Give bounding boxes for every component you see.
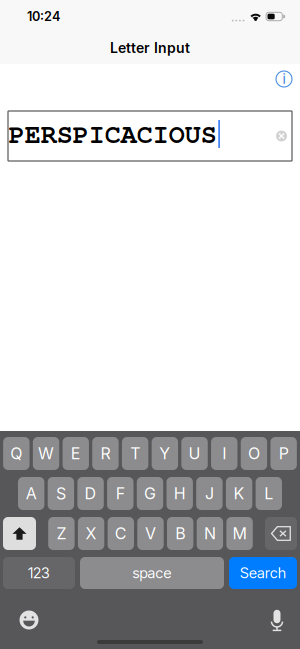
staticText: V [145, 524, 156, 543]
staticText: A [26, 484, 37, 503]
staticText: G [144, 484, 156, 503]
button[interactable]: Info [272, 67, 296, 91]
staticText: Q [10, 444, 22, 463]
staticText: K [234, 484, 245, 503]
button[interactable]: Y [152, 437, 178, 470]
button[interactable]: Emoji keyboard [13, 604, 44, 635]
button[interactable]: K [226, 477, 252, 510]
staticText: P [279, 444, 289, 463]
staticText: L [264, 484, 273, 503]
button[interactable]: G [137, 477, 163, 510]
button[interactable]: V [137, 517, 164, 550]
button[interactable]: U [181, 437, 208, 470]
staticText: 123 [28, 564, 50, 582]
button[interactable]: I [211, 437, 237, 470]
button[interactable]: L [256, 477, 282, 510]
button[interactable]: Z [48, 517, 75, 550]
button[interactable]: R [92, 437, 119, 470]
staticText: PERSPICACIOUS [9, 114, 217, 150]
button[interactable]: S [48, 477, 74, 510]
staticText: I [222, 444, 226, 463]
staticText: B [175, 524, 185, 543]
button[interactable]: Search [229, 557, 297, 589]
button[interactable]: P [270, 437, 297, 470]
staticText: W [38, 444, 54, 463]
button[interactable]: A [18, 477, 44, 510]
button[interactable]: E [63, 437, 89, 470]
staticText: U [188, 444, 200, 463]
staticText: space [132, 564, 171, 582]
staticText: E [71, 444, 81, 463]
staticText: D [85, 484, 97, 503]
staticText: Y [159, 444, 170, 463]
staticText: Search [240, 564, 286, 582]
button[interactable]: H [166, 477, 193, 510]
button[interactable]: W [33, 437, 59, 470]
button[interactable]: N [197, 517, 223, 550]
button[interactable]: D [77, 477, 104, 510]
staticText: R [100, 444, 110, 463]
button[interactable]: 123 [3, 557, 75, 589]
staticText: i [282, 71, 285, 87]
button[interactable]: O [241, 437, 267, 470]
staticText: H [174, 484, 186, 503]
button[interactable]: Dictate [263, 602, 291, 637]
button[interactable]: C [108, 517, 134, 550]
button[interactable]: T [122, 437, 148, 470]
staticText: O [248, 444, 260, 463]
button[interactable]: M [226, 517, 253, 550]
staticText: C [115, 524, 127, 543]
staticText: N [204, 524, 216, 543]
staticText: 10:24 [27, 9, 60, 24]
button[interactable]: F [107, 477, 133, 510]
button[interactable]: Shift [3, 517, 36, 550]
staticText: J [205, 484, 214, 503]
staticText: T [130, 444, 140, 463]
button[interactable]: space [80, 557, 224, 589]
button[interactable]: B [167, 517, 193, 550]
button[interactable]: Q [3, 437, 30, 470]
staticText: X [86, 524, 97, 543]
button[interactable]: Delete [265, 517, 297, 550]
staticText: M [233, 524, 247, 543]
staticText: S [56, 484, 66, 503]
staticText: F [116, 484, 125, 503]
staticText: Z [56, 524, 66, 543]
button[interactable]: X [78, 517, 104, 550]
staticText: Letter Input [110, 39, 190, 56]
button[interactable]: J [196, 477, 223, 510]
